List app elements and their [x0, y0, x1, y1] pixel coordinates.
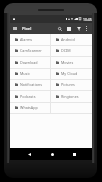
button[interactable]: Android: [51, 34, 92, 45]
button[interactable]: CamScanner: [10, 45, 50, 56]
staticText: Podcasts: [20, 94, 36, 99]
button[interactable]: Notifications: [10, 79, 50, 90]
staticText: Pixel: [22, 26, 32, 32]
button[interactable]: More options: [83, 23, 90, 34]
staticText: Movies: [61, 60, 74, 65]
staticText: My Cloud: [61, 71, 78, 76]
staticText: Download: [20, 60, 38, 65]
staticText: WhatsApp: [20, 105, 38, 110]
staticText: Alarms: [20, 37, 33, 42]
button[interactable]: My Cloud: [51, 68, 92, 79]
staticText: DCIM: [61, 48, 71, 53]
staticText: CamScanner: [20, 48, 42, 53]
staticText: Music: [20, 71, 31, 76]
button[interactable]: Music: [10, 68, 50, 79]
button[interactable]: Home: [43, 148, 61, 160]
button[interactable]: Grid view: [65, 23, 73, 34]
button[interactable]: Podcasts: [10, 91, 50, 102]
button[interactable]: Pictures: [51, 79, 92, 90]
button[interactable]: Download: [10, 57, 50, 68]
staticText: Ringtones: [61, 94, 79, 99]
button[interactable]: WhatsApp: [10, 102, 50, 113]
staticText: Pictures: [61, 82, 75, 87]
staticText: Android: [61, 37, 75, 42]
button[interactable]: Search: [56, 23, 64, 34]
button[interactable]: Open navigation menu: [11, 23, 19, 34]
button[interactable]: Recent apps: [65, 148, 83, 160]
button[interactable]: DCIM: [51, 45, 92, 56]
button[interactable]: Back: [20, 148, 38, 160]
button[interactable]: Ringtones: [51, 91, 92, 102]
staticText: 10:45: [83, 17, 92, 22]
button[interactable]: Movies: [51, 57, 92, 68]
button[interactable]: Alarms: [10, 34, 50, 45]
button[interactable]: Sort: [75, 23, 83, 34]
staticText: Notifications: [20, 82, 42, 87]
